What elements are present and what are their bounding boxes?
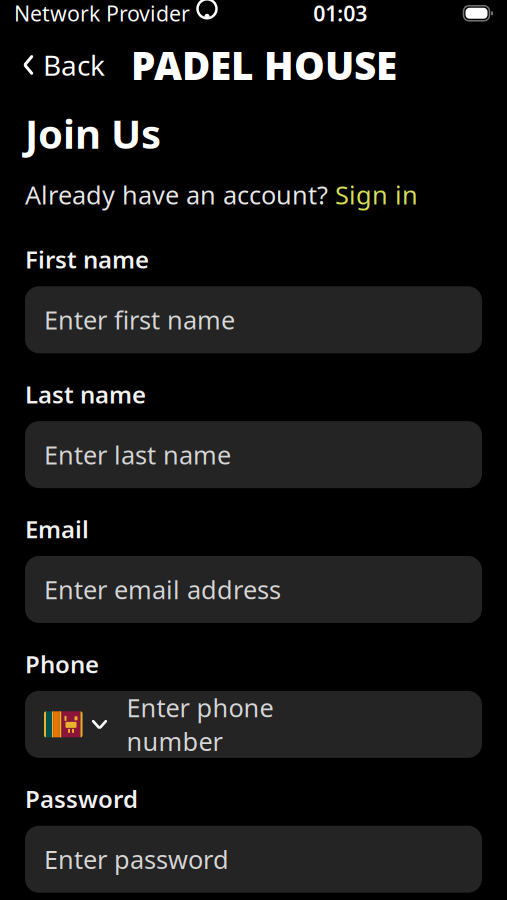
button[interactable]: Enter email address (25, 556, 482, 623)
staticText: 01:03 (313, 0, 367, 27)
staticText: Already have an account? (25, 178, 335, 211)
staticText: Last name (25, 378, 146, 410)
staticText: Email (25, 513, 89, 545)
staticText: First name (25, 243, 149, 275)
button[interactable]: Sign in (335, 178, 418, 211)
staticText: Enter phone number (126, 691, 273, 758)
staticText: Sign in (335, 178, 418, 211)
staticText: Enter first name (44, 303, 235, 336)
button[interactable]: Enter first name (25, 286, 482, 353)
button[interactable]: Enter phone number (108, 677, 295, 772)
staticText: PADEL HOUSE (131, 39, 397, 91)
staticText: Back (43, 46, 105, 83)
staticText: Join Us (25, 107, 161, 160)
staticText: Enter last name (44, 438, 231, 471)
staticText: Password (25, 783, 138, 815)
staticText: Enter email address (44, 573, 281, 606)
button[interactable]: Back (18, 40, 109, 89)
staticText: Phone (25, 648, 99, 680)
button[interactable]: Enter password (25, 826, 482, 893)
staticText: Enter password (44, 842, 229, 876)
staticText: Network Provider (14, 0, 190, 27)
button[interactable]: Select country code (25, 697, 108, 751)
button[interactable]: Enter last name (25, 421, 482, 488)
